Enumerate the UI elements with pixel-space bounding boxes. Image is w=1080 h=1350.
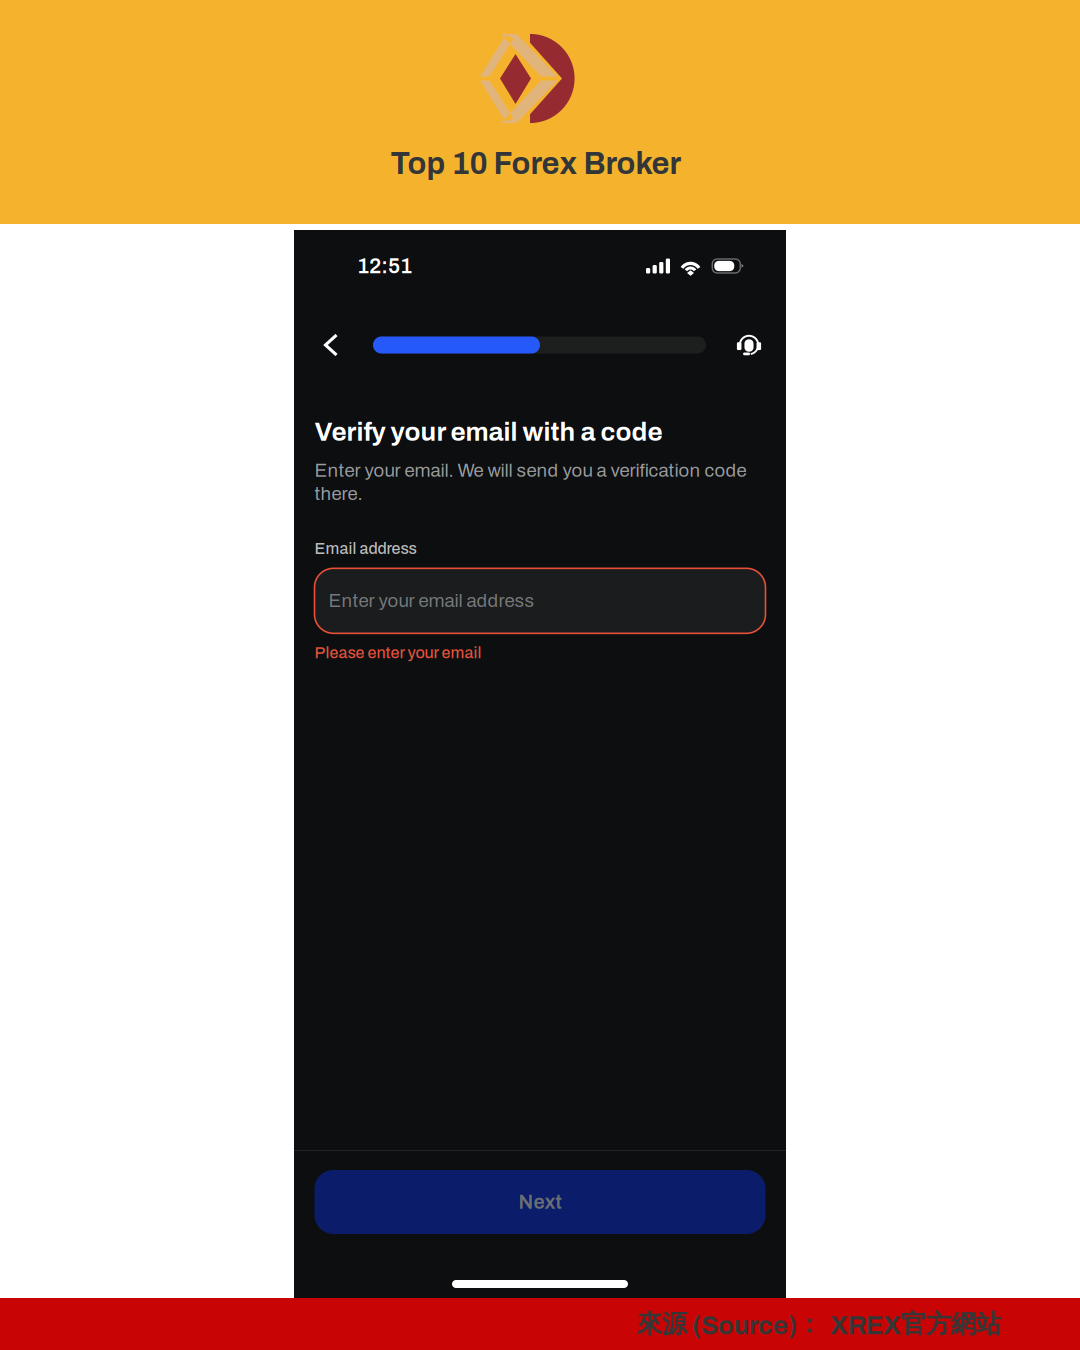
button[interactable]: Enter your email address: [314, 568, 765, 633]
staticText: Please enter your email: [314, 644, 481, 662]
staticText: Top 10 Forex Broker: [390, 147, 681, 180]
staticText: Next: [518, 1191, 561, 1213]
staticText: 12:51: [357, 254, 412, 278]
staticText: Enter your email. We will send you a ver…: [314, 460, 746, 504]
button[interactable]: Next: [314, 1170, 765, 1234]
staticText: 來源 (Source)： XREX官方網站: [637, 1308, 1001, 1340]
staticText: Email address: [314, 540, 416, 557]
button[interactable]: Back: [311, 325, 351, 365]
staticText: Enter your email address: [328, 591, 534, 611]
staticText: Verify your email with a code: [314, 418, 662, 446]
button[interactable]: Customer support: [731, 327, 767, 363]
